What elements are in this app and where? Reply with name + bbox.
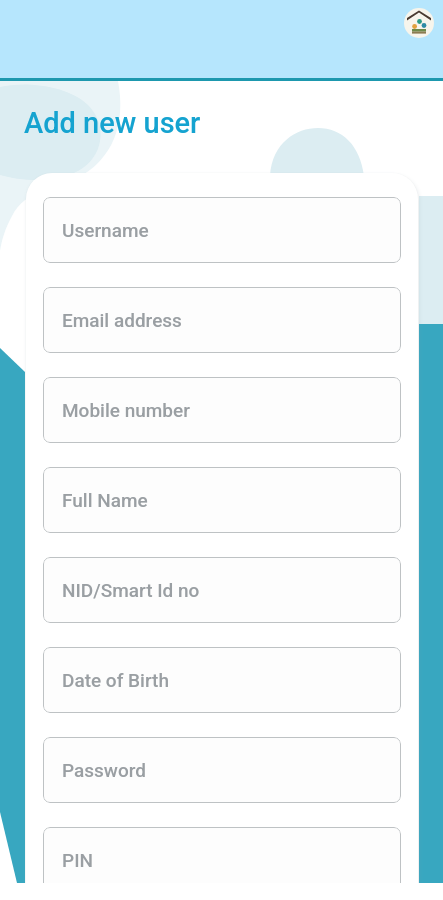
staticText: NID/Smart Id no bbox=[62, 579, 200, 601]
button[interactable]: PIN bbox=[43, 827, 401, 883]
button[interactable]: Date of Birth bbox=[43, 647, 401, 713]
button[interactable]: Password bbox=[43, 737, 401, 803]
button[interactable]: NID/Smart Id no bbox=[43, 557, 401, 623]
button[interactable]: Add new user bbox=[24, 106, 201, 140]
staticText: Username bbox=[62, 219, 149, 241]
button[interactable]: Email address bbox=[43, 287, 401, 353]
staticText: Add new user bbox=[24, 106, 201, 140]
button[interactable]: Mobile number bbox=[43, 377, 401, 443]
button[interactable]: Username bbox=[43, 197, 401, 263]
staticText: Email address bbox=[62, 309, 182, 331]
button[interactable]: App logo bbox=[404, 8, 434, 38]
staticText: PIN bbox=[62, 849, 93, 871]
staticText: Password bbox=[62, 759, 146, 781]
staticText: Mobile number bbox=[62, 399, 190, 421]
staticText: Full Name bbox=[62, 489, 148, 511]
staticText: Date of Birth bbox=[62, 669, 169, 691]
button[interactable]: Full Name bbox=[43, 467, 401, 533]
